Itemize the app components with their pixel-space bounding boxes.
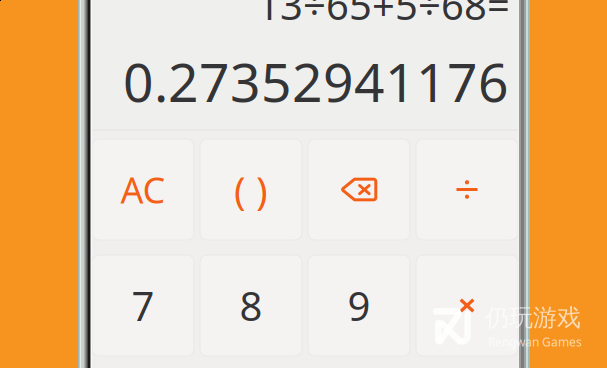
- staticText: AC: [120, 166, 165, 213]
- button[interactable]: Backspace: [308, 139, 410, 240]
- button[interactable]: Divide: [416, 139, 518, 240]
- staticText: Rengwan Games: [488, 334, 582, 350]
- button[interactable]: 9: [308, 255, 410, 356]
- button[interactable]: All clear: [92, 139, 194, 240]
- button[interactable]: Multiply: [416, 255, 518, 356]
- button[interactable]: 7: [92, 255, 194, 356]
- button[interactable]: Parentheses: [200, 139, 302, 240]
- staticText: 8: [239, 279, 262, 332]
- staticText: 13÷65+5÷68=: [257, 0, 510, 31]
- staticText: 7: [131, 279, 154, 332]
- staticText: 仍玩游戏: [485, 303, 581, 332]
- staticText: 9: [347, 279, 370, 332]
- staticText: ( ): [234, 164, 268, 215]
- button[interactable]: 8: [200, 255, 302, 356]
- staticText: 0.27352941176: [123, 46, 509, 117]
